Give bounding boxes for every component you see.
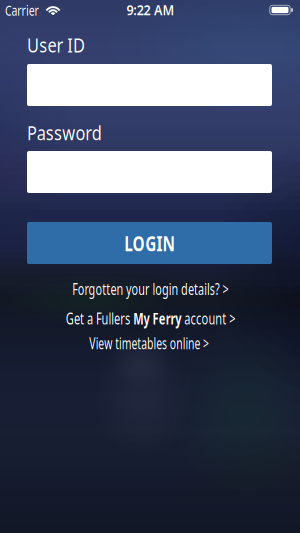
button[interactable]: LOGIN [27,222,272,264]
button[interactable]: Forgotten your login details? > [35,278,265,299]
staticText: LOGIN [114,229,185,257]
staticText: Password [27,119,118,146]
button[interactable]: View timetables online > [57,332,241,354]
staticText: Carrier [5,0,52,20]
staticText: View timetables online > [57,332,241,354]
button[interactable]: Get a Fullers My Ferry account > [27,308,273,329]
staticText: 9:22 AM [122,0,178,19]
staticText: User ID [27,31,98,58]
staticText: Get a Fullers My Ferry account > [27,308,273,329]
staticText: Forgotten your login details? > [35,278,265,299]
